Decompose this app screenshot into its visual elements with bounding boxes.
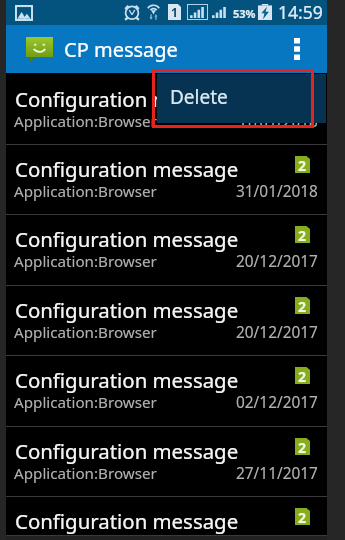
button[interactable]: Delete: [157, 74, 326, 123]
staticText: Delete: [170, 84, 228, 110]
button[interactable]: Configuration message: [6, 497, 327, 536]
staticText: Application:Browser: [14, 111, 157, 132]
staticText: Application:Browser: [14, 322, 157, 343]
staticText: 02/12/2017: [236, 392, 318, 413]
staticText: 2: [298, 367, 307, 384]
staticText: Configuration message: [15, 437, 239, 465]
staticText: Configuration message: [15, 507, 239, 535]
staticText: Configuration message: [15, 85, 239, 113]
staticText: Application:Browser: [14, 463, 157, 484]
staticText: 53%: [233, 6, 256, 21]
button[interactable]: Configuration message: [6, 75, 327, 145]
staticText: 14:59: [278, 0, 323, 24]
staticText: Application:Browser: [14, 181, 157, 202]
staticText: 20/12/2017: [236, 251, 318, 272]
staticText: 2: [298, 297, 307, 314]
staticText: Configuration message: [15, 296, 239, 324]
staticText: Configuration message: [15, 366, 239, 394]
staticText: 2: [298, 156, 307, 173]
button[interactable]: Configuration message: [6, 215, 327, 286]
staticText: Application:Browser: [14, 251, 157, 272]
staticText: Application:Browser: [14, 533, 157, 540]
button[interactable]: Configuration message: [6, 145, 327, 215]
staticText: 2: [298, 226, 307, 243]
staticText: Configuration message: [15, 225, 239, 253]
button[interactable]: Configuration message: [6, 356, 327, 427]
staticText: 20/11/2017: [236, 533, 318, 540]
staticText: Application:Browser: [14, 392, 157, 413]
staticText: 31/01/2018: [236, 111, 318, 132]
staticText: Configuration message: [15, 155, 239, 183]
staticText: CP message: [64, 36, 178, 63]
staticText: 27/11/2017: [236, 463, 318, 484]
staticText: 1: [171, 4, 178, 20]
staticText: 2: [298, 508, 307, 525]
button[interactable]: Configuration message: [6, 286, 327, 356]
staticText: 2: [298, 438, 307, 455]
button[interactable]: Configuration message: [6, 427, 327, 497]
button[interactable]: More options: [267, 25, 327, 73]
staticText: 20/12/2017: [236, 322, 318, 343]
staticText: 31/01/2018: [236, 181, 318, 202]
